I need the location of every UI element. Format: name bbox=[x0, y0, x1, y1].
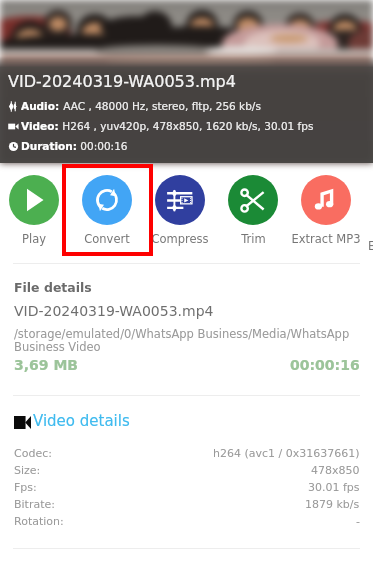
staticText: - bbox=[356, 515, 360, 528]
staticText: AAC , 48000 Hz, stereo, fltp, 256 kb/s bbox=[60, 100, 261, 112]
staticText: H264 , yuv420p, 478x850, 1620 kb/s, 30.0… bbox=[59, 120, 314, 132]
staticText: 3,69 MB bbox=[14, 357, 79, 373]
staticText: File details bbox=[14, 280, 92, 295]
staticText: Fps: bbox=[14, 481, 37, 494]
staticText: Play bbox=[22, 232, 46, 245]
staticText: Size: bbox=[14, 464, 41, 477]
staticText: /storage/emulated/0/WhatsApp Business/Me… bbox=[14, 327, 360, 353]
button[interactable]: Play bbox=[0, 163, 70, 245]
staticText: Codec: bbox=[14, 447, 52, 460]
staticText: Rotation: bbox=[14, 515, 64, 528]
staticText: VID-20240319-WA0053.mp4 bbox=[8, 72, 236, 91]
staticText: Extract MP3 bbox=[291, 232, 361, 245]
staticText: E bbox=[368, 239, 373, 252]
button[interactable]: Trim bbox=[217, 163, 289, 245]
staticText: Convert bbox=[84, 232, 130, 245]
staticText: Video: bbox=[21, 120, 59, 132]
staticText: VID-20240319-WA0053.mp4 bbox=[14, 303, 214, 319]
staticText: 00:00:16 bbox=[290, 357, 360, 373]
staticText: 00:00:16 bbox=[77, 140, 128, 152]
button[interactable]: Extract MP3 bbox=[290, 163, 362, 245]
staticText: Bitrate: bbox=[14, 498, 55, 511]
staticText: h264 (avc1 / 0x31637661) bbox=[213, 447, 360, 460]
staticText: 1879 kb/s bbox=[305, 498, 360, 511]
staticText: Duration: bbox=[21, 140, 77, 152]
staticText: Audio: bbox=[21, 100, 60, 112]
button[interactable]: Convert bbox=[71, 163, 143, 245]
staticText: 478x850 bbox=[311, 464, 360, 477]
staticText: Trim bbox=[241, 232, 266, 245]
staticText: Video details bbox=[33, 412, 130, 429]
staticText: 30.01 fps bbox=[308, 481, 360, 494]
staticText: Compress bbox=[151, 232, 209, 245]
button[interactable]: Compress bbox=[144, 163, 216, 245]
